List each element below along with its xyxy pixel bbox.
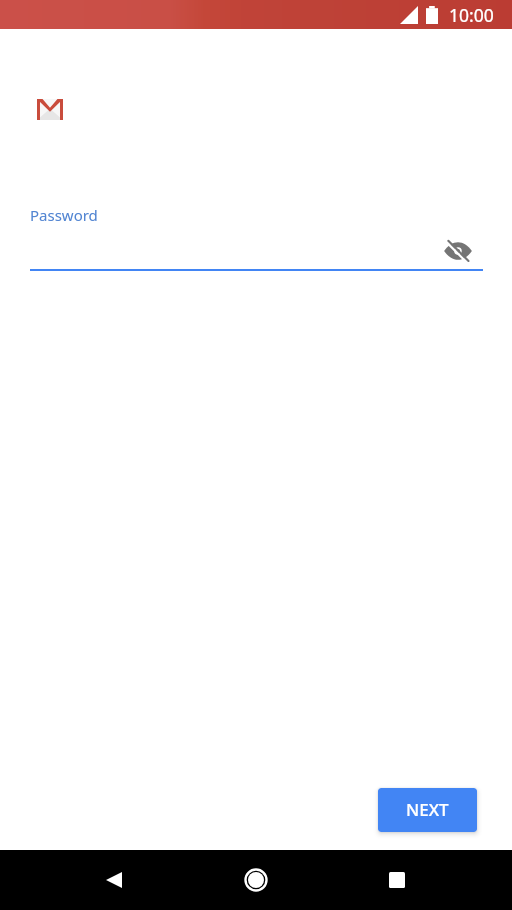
- button[interactable]: Home: [232, 856, 280, 904]
- staticText: Password: [30, 205, 98, 225]
- staticText: 10:00: [449, 3, 494, 27]
- button[interactable]: Recent apps: [373, 856, 421, 904]
- button[interactable]: Back: [90, 856, 138, 904]
- button[interactable]: Show password: [436, 229, 480, 273]
- staticText: NEXT: [406, 798, 449, 821]
- button[interactable]: NEXT: [378, 788, 477, 832]
- button[interactable]: Password: [30, 200, 483, 271]
